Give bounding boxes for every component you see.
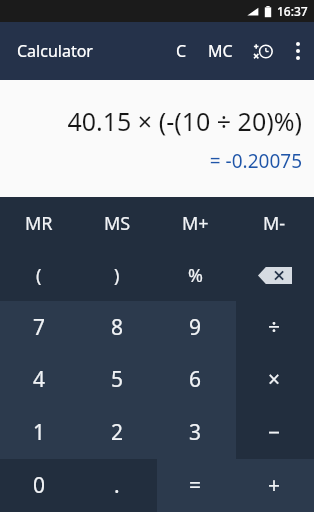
button[interactable]: 8: [78, 301, 156, 353]
button[interactable]: Backspace: [235, 249, 314, 301]
button[interactable]: 1: [0, 406, 78, 459]
staticText: %: [188, 263, 203, 288]
button[interactable]: (: [0, 249, 78, 301]
button[interactable]: .: [78, 459, 156, 512]
button[interactable]: MC: [198, 22, 242, 80]
staticText: 5: [111, 365, 124, 394]
staticText: +: [268, 471, 281, 500]
staticText: 0: [33, 471, 46, 500]
staticText: 16:37: [277, 3, 308, 19]
staticText: 1: [33, 418, 46, 447]
staticText: MR: [25, 211, 53, 236]
button[interactable]: More options: [282, 22, 314, 80]
button[interactable]: 2: [78, 406, 156, 459]
button[interactable]: ÷: [235, 301, 314, 353]
staticText: .: [114, 471, 120, 500]
staticText: (: [36, 263, 42, 288]
button[interactable]: 5: [78, 353, 156, 406]
button[interactable]: 9: [156, 301, 235, 353]
staticText: 40.15 × (-(10 ÷ 20)%): [12, 104, 302, 138]
button[interactable]: History: [242, 22, 282, 80]
button[interactable]: M+: [156, 197, 235, 249]
staticText: M-: [263, 211, 286, 236]
staticText: 9: [189, 313, 202, 342]
button[interactable]: C: [164, 22, 198, 80]
staticText: MC: [208, 40, 233, 62]
staticText: ÷: [268, 313, 281, 342]
staticText: ×: [268, 365, 281, 394]
staticText: MS: [104, 211, 131, 236]
button[interactable]: 0: [0, 459, 78, 512]
button[interactable]: −: [235, 406, 314, 459]
staticText: Calculator: [17, 40, 93, 62]
button[interactable]: ×: [235, 353, 314, 406]
staticText: = -0.20075: [12, 148, 302, 174]
staticText: −: [268, 418, 281, 447]
button[interactable]: +: [235, 459, 314, 512]
staticText: 8: [111, 313, 124, 342]
staticText: 2: [111, 418, 124, 447]
staticText: ): [114, 263, 120, 288]
staticText: C: [176, 40, 187, 62]
button[interactable]: MS: [78, 197, 156, 249]
staticText: 3: [189, 418, 202, 447]
staticText: 6: [189, 365, 202, 394]
staticText: M+: [182, 211, 209, 236]
button[interactable]: 4: [0, 353, 78, 406]
button[interactable]: MR: [0, 197, 78, 249]
button[interactable]: 6: [156, 353, 235, 406]
button[interactable]: =: [156, 459, 235, 512]
button[interactable]: 7: [0, 301, 78, 353]
staticText: =: [189, 471, 202, 500]
button[interactable]: ): [78, 249, 156, 301]
button[interactable]: %: [156, 249, 235, 301]
staticText: 4: [33, 365, 46, 394]
button[interactable]: M-: [235, 197, 314, 249]
button[interactable]: 3: [156, 406, 235, 459]
staticText: 7: [33, 313, 46, 342]
